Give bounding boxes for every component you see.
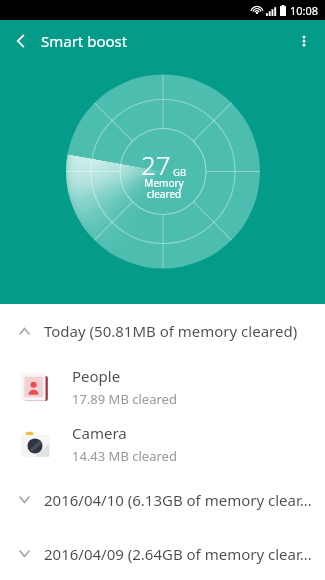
staticText: 14.43 MB cleared (72, 447, 177, 465)
button[interactable]: Back (0, 20, 42, 62)
button[interactable]: Today (50.81MB of memory cleared) (0, 304, 325, 358)
staticText: 2016/04/09 (2.64GB of memory clear... (44, 544, 312, 564)
button[interactable]: More options (283, 20, 325, 62)
button[interactable]: 2016/04/10 (6.13GB of memory clear... (0, 472, 325, 527)
button[interactable]: Camera (0, 415, 325, 472)
staticText: Memory cleared (144, 176, 184, 201)
staticText: 27 (141, 147, 171, 182)
staticText: People (72, 366, 121, 386)
button[interactable]: 2016/04/09 (2.64GB of memory clear... (0, 527, 325, 580)
staticText: 2016/04/10 (6.13GB of memory clear... (44, 490, 312, 510)
staticText: GB (173, 166, 187, 179)
staticText: Smart boost (41, 31, 128, 51)
button[interactable]: People (0, 358, 325, 415)
staticText: Camera (72, 423, 127, 443)
staticText: Today (50.81MB of memory cleared) (44, 321, 298, 341)
staticText: 17.89 MB cleared (72, 390, 177, 408)
staticText: 10:08 (290, 3, 319, 18)
